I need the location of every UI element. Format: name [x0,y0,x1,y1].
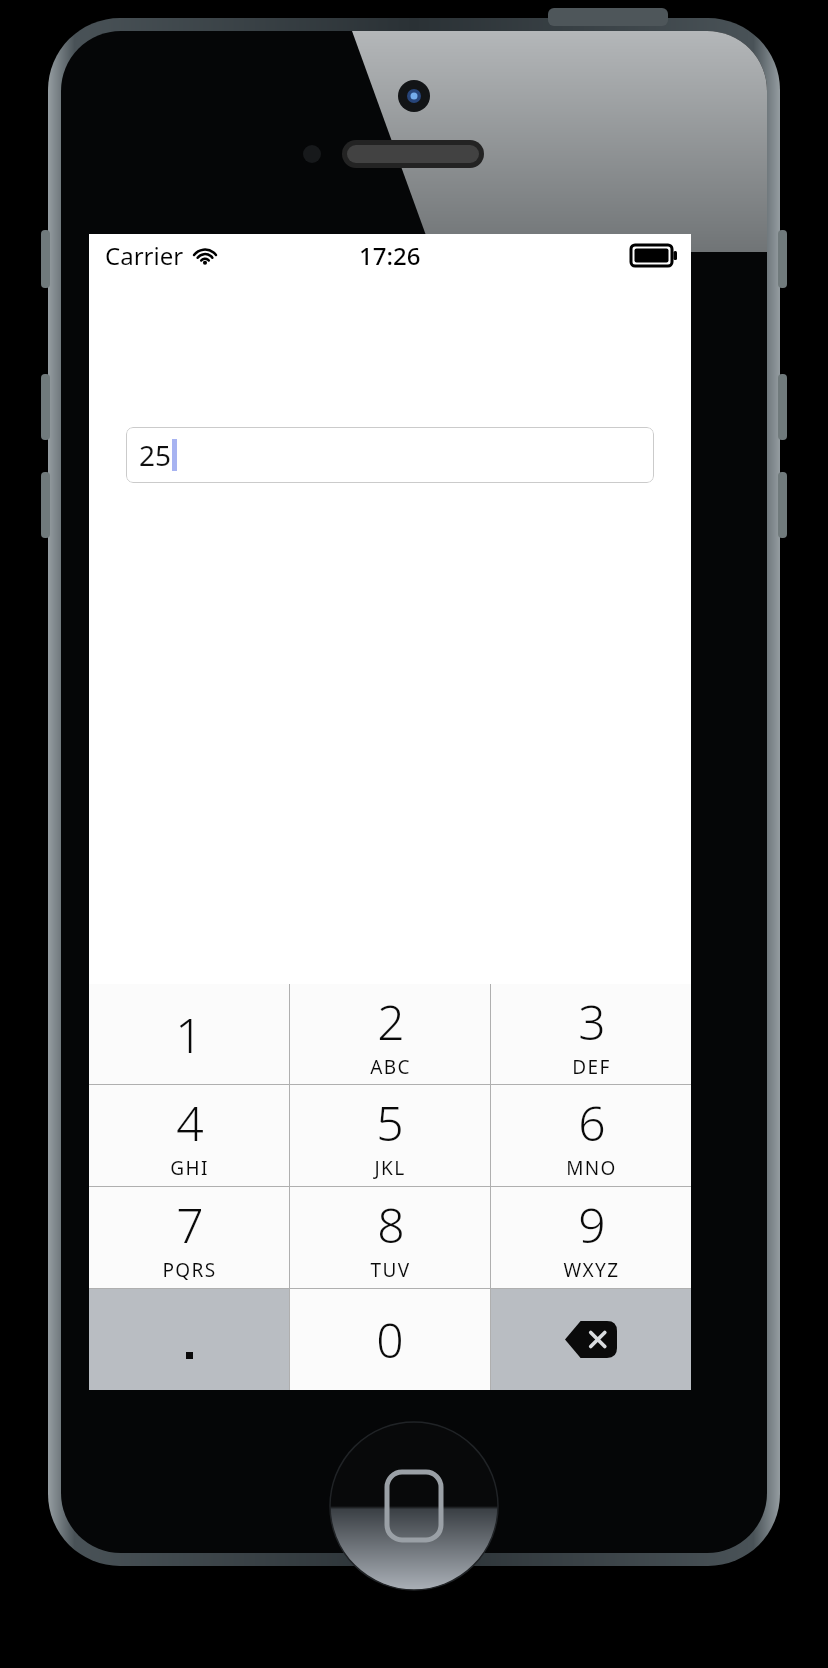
staticText: 17:26 [359,239,421,272]
staticText: WXYZ [563,1257,620,1283]
button[interactable]: 2 [290,984,490,1084]
button[interactable]: Backspace [491,1289,691,1390]
staticText: 1 [175,1002,203,1067]
button[interactable]: 25 [126,427,654,483]
staticText: ABC [370,1054,411,1080]
staticText: 8 [377,1192,405,1257]
button[interactable]: 0 [290,1289,490,1390]
staticText: GHI [170,1155,209,1181]
staticText: 2 [377,989,405,1054]
button[interactable]: 4 [89,1085,289,1186]
button[interactable]: 3 [491,984,691,1084]
staticText: Carrier [105,239,184,272]
staticText: TUV [370,1257,411,1283]
button[interactable]: 5 [290,1085,490,1186]
staticText: JKL [374,1155,406,1181]
staticText: MNO [566,1155,617,1181]
staticText: 9 [578,1192,606,1257]
staticText: 7 [176,1192,204,1257]
staticText: 0 [376,1307,404,1372]
button[interactable]: 7 [89,1187,289,1288]
staticText: 6 [578,1090,606,1155]
button[interactable]: 9 [491,1187,691,1288]
staticText: 5 [376,1090,404,1155]
staticText: 3 [578,989,606,1054]
staticText: 4 [176,1090,204,1155]
button[interactable]: 6 [491,1085,691,1186]
staticText: DEF [572,1054,611,1080]
button[interactable]: 1 [89,984,289,1084]
staticText: PQRS [162,1257,217,1283]
button[interactable]: 8 [290,1187,490,1288]
staticText: 25 [139,436,172,474]
button[interactable] [89,1289,289,1390]
